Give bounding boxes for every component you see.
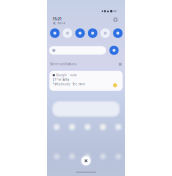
button[interactable]: Voice search: [109, 46, 119, 55]
button[interactable]: Quick setting: [88, 28, 97, 38]
button[interactable]: Quick setting: [63, 28, 72, 38]
button[interactable]: Search: [49, 46, 106, 55]
button[interactable]: Quick setting: [113, 28, 123, 38]
staticText: Partly cloudy · See more: [53, 82, 86, 86]
staticText: Sat, Nov 4: [53, 21, 66, 25]
button[interactable]: Quick setting: [50, 28, 60, 38]
staticText: 21° in Sofia: [53, 78, 69, 81]
staticText: Silent notifications: [50, 62, 76, 66]
button[interactable]: Quick setting: [100, 28, 110, 38]
button[interactable]: Google · now: [49, 71, 123, 91]
button[interactable]: Manage notifications: [119, 63, 122, 66]
button[interactable]: Settings: [113, 17, 118, 22]
button[interactable]: Close notification shade: [81, 155, 91, 166]
button[interactable]: Quick setting: [75, 28, 85, 38]
staticText: Google · now: [56, 73, 76, 77]
staticText: 15:21: [53, 16, 62, 21]
